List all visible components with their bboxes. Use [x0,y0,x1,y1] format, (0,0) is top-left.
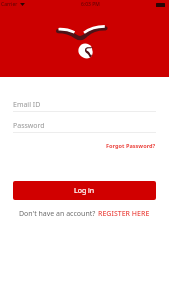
staticText: Log in [74,186,95,196]
button[interactable]: Forgot Password? [105,140,157,152]
staticText: Email ID [13,100,41,110]
button[interactable]: Log in [13,181,156,200]
staticText: 6:03 PM [81,1,100,8]
button[interactable]: REGISTER HERE [98,209,150,219]
staticText: Carrier [1,1,18,8]
staticText: Password [13,121,45,131]
staticText: Don't have an account? [19,209,98,219]
staticText: Forgot Password? [106,142,156,150]
button[interactable]: Password [0,121,169,133]
button[interactable]: Email ID [0,100,169,112]
staticText: REGISTER HERE [98,209,150,219]
